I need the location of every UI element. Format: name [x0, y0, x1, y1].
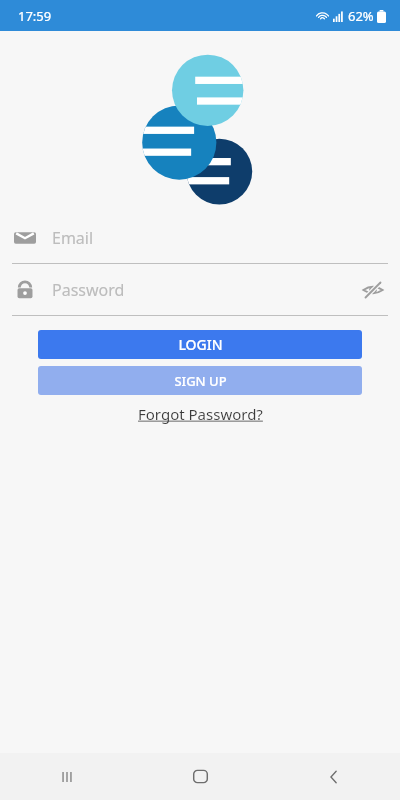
other: Email [14, 227, 36, 249]
button[interactable]: SIGN UP [38, 366, 362, 395]
staticText: Password [52, 279, 360, 301]
staticText: SIGN UP [174, 372, 227, 390]
button[interactable]: Home [134, 753, 267, 800]
other: Password [14, 279, 36, 301]
button[interactable]: Show password [360, 277, 386, 303]
button[interactable]: Recents [0, 753, 134, 800]
staticText: 62% [348, 7, 374, 25]
button[interactable]: Email [0, 212, 400, 263]
staticText: 17:59 [18, 7, 52, 25]
button[interactable]: Back [267, 753, 400, 800]
button[interactable]: LOGIN [38, 330, 362, 359]
button[interactable]: Forgot Password? [134, 402, 267, 426]
button[interactable]: Password [0, 264, 400, 315]
staticText: LOGIN [178, 335, 223, 354]
staticText: Email [52, 227, 386, 249]
